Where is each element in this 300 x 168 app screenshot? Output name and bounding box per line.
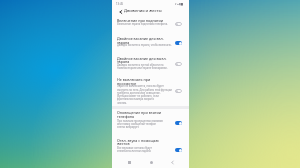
staticText: Включение экрана поднятием телефона. [117, 22, 168, 25]
staticText: чехлом. [117, 101, 127, 104]
button[interactable] [112, 17, 189, 28]
staticText: экрана [117, 40, 130, 45]
staticText: Все звуковые сигналы будут [117, 146, 152, 149]
staticText: Функция может не работать, если [117, 94, 159, 97]
button[interactable] [112, 136, 189, 154]
staticText: телефона [117, 114, 135, 119]
staticText: или новых сообщений телефон [117, 122, 156, 125]
button[interactable]: Recents [125, 158, 133, 166]
button[interactable] [112, 34, 189, 48]
staticText: смотреть на него. Для работы этой функци… [117, 88, 172, 91]
button[interactable]: Switch on [175, 121, 182, 125]
button[interactable]: Switch off [175, 22, 182, 26]
staticText: Не выключать при [117, 77, 151, 82]
staticText: ▾ ▴ ▮▆ [175, 2, 183, 6]
staticText: главном экране или экране блокировки. [117, 66, 168, 69]
staticText: требуется достаточное освещение. [117, 91, 161, 94]
button[interactable] [112, 75, 189, 106]
staticText: фронтальная камера закрыта [117, 97, 154, 100]
staticText: Движения и жесты [124, 8, 162, 13]
button[interactable] [112, 54, 189, 71]
button[interactable]: Switch off [175, 89, 182, 93]
staticText: Двойное касание для выкл. [117, 56, 167, 61]
button[interactable] [112, 108, 189, 130]
staticText: слегка вибрирует. [117, 125, 140, 128]
staticText: Дважды коснитесь пустой области на [117, 63, 164, 66]
staticText: 13:45 [116, 2, 124, 6]
button[interactable]: Switch off [175, 62, 182, 66]
staticText: Включение при поднятии [117, 18, 164, 23]
staticText: Оповещение при взятии [117, 110, 162, 115]
staticText: просмотре [117, 81, 137, 86]
button[interactable]: Switch on [175, 41, 182, 45]
button[interactable]: Home [147, 158, 155, 166]
button[interactable]: Switch on [175, 148, 182, 152]
staticText: жестов [117, 141, 130, 146]
staticText: Двойное касание для вкл. [117, 36, 164, 41]
staticText: Откл. звука с помощью [117, 138, 159, 143]
staticText: Дважды коснитесь экрана, чтобы включить. [117, 43, 172, 46]
button[interactable]: Back [168, 158, 176, 166]
staticText: Экран не выключается, пока вы будет [117, 84, 164, 87]
staticText: экрана [117, 59, 130, 64]
staticText: При наличии пропущенных вызовов [117, 119, 163, 122]
button[interactable]: Back [117, 8, 124, 15]
staticText: отключены жестом ладони. [117, 149, 152, 152]
